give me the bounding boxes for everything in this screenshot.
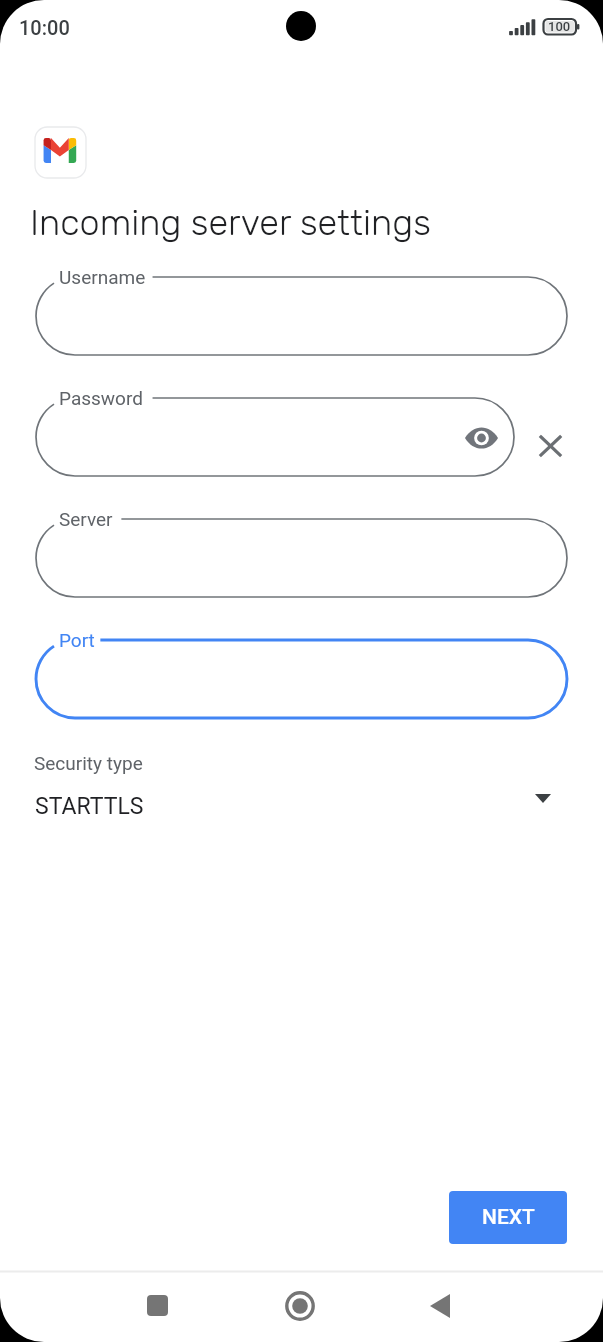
button[interactable]	[36, 519, 567, 597]
button[interactable]: Back	[405, 1271, 474, 1340]
button[interactable]	[20, 745, 580, 823]
staticText: 10:00	[19, 16, 70, 39]
button[interactable]: Recent apps	[123, 1271, 192, 1340]
button[interactable]: Home	[265, 1271, 334, 1340]
button[interactable]: Clear password	[526, 421, 575, 470]
staticText: Password	[59, 387, 143, 409]
staticText: Port	[59, 629, 95, 651]
staticText: Server	[59, 508, 113, 530]
staticText: Security type	[34, 752, 143, 774]
staticText: NEXT	[482, 1205, 535, 1230]
button[interactable]	[36, 640, 567, 718]
staticText: Username	[59, 266, 146, 288]
button[interactable]	[36, 398, 514, 476]
staticText: Incoming server settings	[30, 201, 431, 244]
button[interactable]: Select security type	[520, 775, 566, 821]
button[interactable]: NEXT	[449, 1191, 567, 1244]
staticText: 100	[548, 19, 571, 34]
button[interactable]: Show password	[457, 413, 506, 462]
staticText: STARTTLS	[35, 793, 144, 820]
button[interactable]	[36, 277, 567, 355]
